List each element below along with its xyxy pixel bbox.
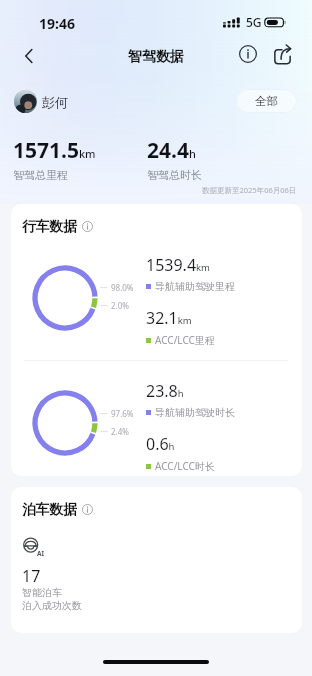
staticText: 智驾总里程 bbox=[13, 168, 68, 182]
staticText: 智驾总时长 bbox=[147, 168, 202, 182]
staticText: 24.4h bbox=[147, 136, 196, 165]
staticText: 17 bbox=[22, 565, 41, 587]
button[interactable]: Share bbox=[268, 41, 296, 69]
staticText: 全部 bbox=[255, 94, 278, 108]
staticText: 泊车数据 bbox=[22, 501, 78, 518]
staticText: 导航辅助驾驶时长 bbox=[155, 406, 235, 419]
staticText: 智能泊车 bbox=[22, 586, 62, 599]
staticText: ACC/LCC时长 bbox=[155, 459, 215, 473]
staticText: 行车数据 bbox=[22, 218, 78, 235]
staticText: 2.4% bbox=[111, 426, 129, 437]
staticText: 泊入成功次数 bbox=[22, 599, 82, 612]
staticText: 19:46 bbox=[39, 14, 75, 33]
staticText: 2.0% bbox=[111, 300, 129, 311]
button[interactable]: Info bbox=[234, 40, 262, 68]
staticText: 导航辅助驾驶里程 bbox=[155, 280, 235, 293]
staticText: AI bbox=[37, 549, 45, 558]
staticText: 98.0% bbox=[111, 282, 134, 293]
staticText: ACC/LCC里程 bbox=[155, 333, 215, 347]
staticText: 数据更新至2025年06月06日 bbox=[202, 185, 297, 195]
staticText: 1539.4km bbox=[146, 254, 211, 276]
button[interactable]: Back bbox=[14, 41, 44, 71]
staticText: 1571.5km bbox=[13, 136, 96, 165]
staticText: 23.8h bbox=[146, 380, 184, 402]
button[interactable]: 全部 bbox=[236, 89, 297, 113]
staticText: 97.6% bbox=[111, 408, 134, 419]
staticText: 32.1km bbox=[146, 307, 192, 329]
staticText: 彭何 bbox=[42, 94, 68, 110]
staticText: 0.6h bbox=[146, 433, 175, 455]
staticText: 智驾数据 bbox=[128, 48, 184, 66]
staticText: 5G bbox=[246, 14, 262, 30]
